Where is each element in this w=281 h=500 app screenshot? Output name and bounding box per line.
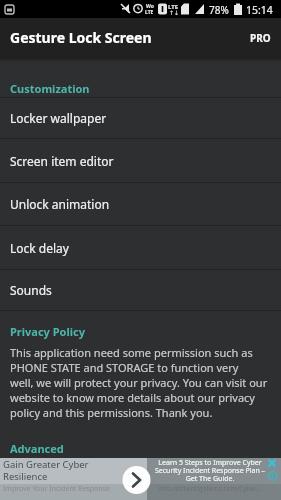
staticText: Get The Guide. — [147, 474, 273, 484]
button[interactable]: Gain Greater Cyber — [0, 458, 281, 500]
staticText: Gain Greater Cyber — [3, 458, 89, 471]
button[interactable]: Unlock animation — [0, 183, 281, 225]
staticText: Learn 5 Steps to Improve Cyber — [147, 458, 273, 468]
staticText: LTE — [145, 9, 154, 16]
staticText: Improve Your Incident Response — [3, 484, 110, 494]
staticText: Security Incident Response Plan – — [147, 466, 273, 476]
staticText: Privacy Policy — [10, 324, 85, 339]
staticText: ↑↓ — [169, 9, 180, 16]
staticText: Locker wallpaper — [10, 110, 107, 126]
staticText: 15:14 — [246, 3, 273, 17]
staticText: 78% — [209, 3, 229, 17]
staticText: PRO — [250, 31, 271, 45]
button[interactable]: Sounds — [0, 270, 281, 310]
staticText: Advanced — [10, 441, 64, 456]
button[interactable]: Locker wallpaper — [0, 98, 281, 138]
staticText: info.resilientsystems.com/Cyber... — [147, 484, 273, 493]
staticText: Screen item editor — [10, 153, 114, 169]
button[interactable]: Screen item editor — [0, 139, 281, 182]
staticText: Lock delay — [10, 240, 69, 256]
staticText: Sounds — [10, 282, 52, 298]
staticText: Customization — [10, 81, 90, 96]
staticText: Resilience — [3, 470, 48, 483]
staticText: Unlock animation — [10, 196, 110, 212]
button[interactable]: Lock delay — [0, 226, 281, 269]
button[interactable]: PRO — [250, 31, 271, 45]
staticText: LTE — [168, 3, 179, 11]
staticText: Gesture Lock Screen — [10, 28, 152, 47]
staticText: Wo — [146, 3, 154, 10]
staticText: This application need some permission su… — [10, 345, 268, 420]
